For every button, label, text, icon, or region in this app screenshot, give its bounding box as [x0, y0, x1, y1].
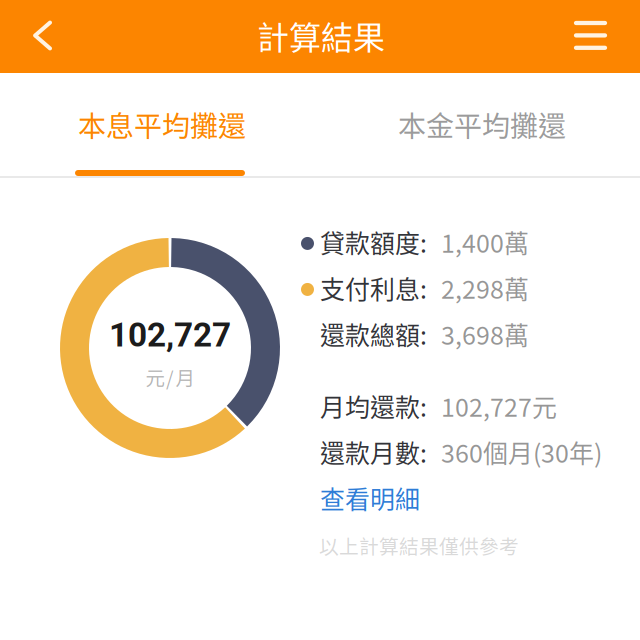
staticText: 還款月數:	[320, 434, 427, 470]
staticText: 計算結果	[257, 12, 385, 59]
button[interactable]: Menu	[555, 0, 640, 73]
staticText: 3,698萬	[441, 316, 529, 352]
staticText: 月均還款:	[320, 388, 427, 424]
button[interactable]: Back	[0, 0, 85, 73]
button[interactable]: 本息平均攤還	[0, 73, 320, 176]
staticText: 2,298萬	[441, 270, 529, 306]
staticText: 元/月	[145, 363, 195, 391]
staticText: 支付利息:	[320, 270, 427, 306]
staticText: 本息平均攤還	[78, 104, 246, 145]
staticText: 102,727	[109, 315, 231, 355]
button[interactable]: 查看明細	[300, 480, 435, 514]
staticText: 還款總額:	[320, 316, 427, 352]
staticText: 102,727元	[441, 388, 557, 424]
staticText: 查看明細	[320, 480, 420, 516]
staticText: 360個月(30年)	[441, 434, 602, 470]
staticText: 1,400萬	[441, 224, 529, 260]
staticText: 貸款額度:	[320, 224, 427, 260]
staticText: 本金平均攤還	[398, 104, 566, 145]
staticText: 以上計算結果僅供參考	[319, 531, 519, 560]
button[interactable]: 本金平均攤還	[320, 73, 640, 176]
